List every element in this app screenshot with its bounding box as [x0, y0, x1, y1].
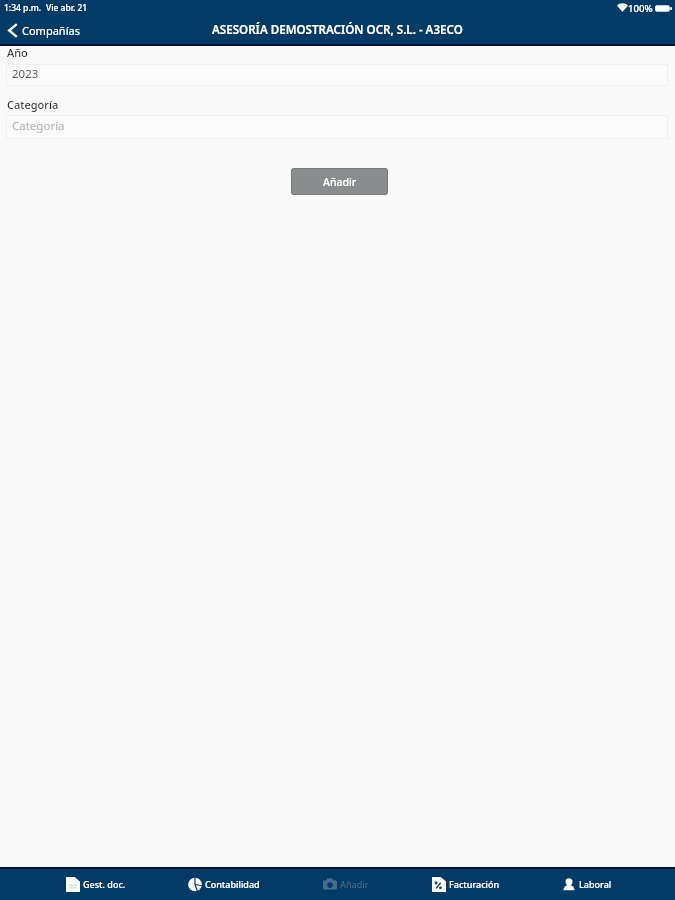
staticText: Laboral — [579, 878, 612, 890]
button[interactable]: Gest. doc. — [66, 869, 126, 899]
button[interactable]: Añadir — [291, 168, 388, 195]
staticText: Añadir — [340, 878, 369, 890]
button[interactable]: Contabilidad — [188, 869, 260, 899]
staticText: 2023 — [12, 66, 39, 82]
staticText: Contabilidad — [205, 878, 260, 890]
staticText: Compañías — [22, 23, 80, 38]
button[interactable]: Back — [0, 16, 90, 44]
staticText: Categoría — [7, 97, 59, 112]
staticText: Vie abr. 21 — [46, 2, 88, 14]
staticText: 1:34 p.m. — [4, 2, 42, 14]
button[interactable]: Facturación — [432, 869, 500, 899]
staticText: Facturación — [449, 878, 500, 890]
button[interactable]: 2023 — [6, 64, 668, 86]
staticText: Categoría — [12, 118, 65, 134]
staticText: Gest. doc. — [83, 878, 126, 890]
button[interactable]: Categoría — [6, 115, 668, 139]
staticText: Año — [7, 45, 28, 60]
button[interactable]: Añadir — [323, 869, 369, 899]
staticText: Añadir — [323, 175, 357, 189]
other: Back — [8, 23, 18, 38]
staticText: ASESORÍA DEMOSTRACIÓN OCR, S.L. - A3ECO — [212, 22, 463, 38]
button[interactable]: Laboral — [562, 869, 612, 899]
staticText: 100% — [628, 2, 653, 15]
